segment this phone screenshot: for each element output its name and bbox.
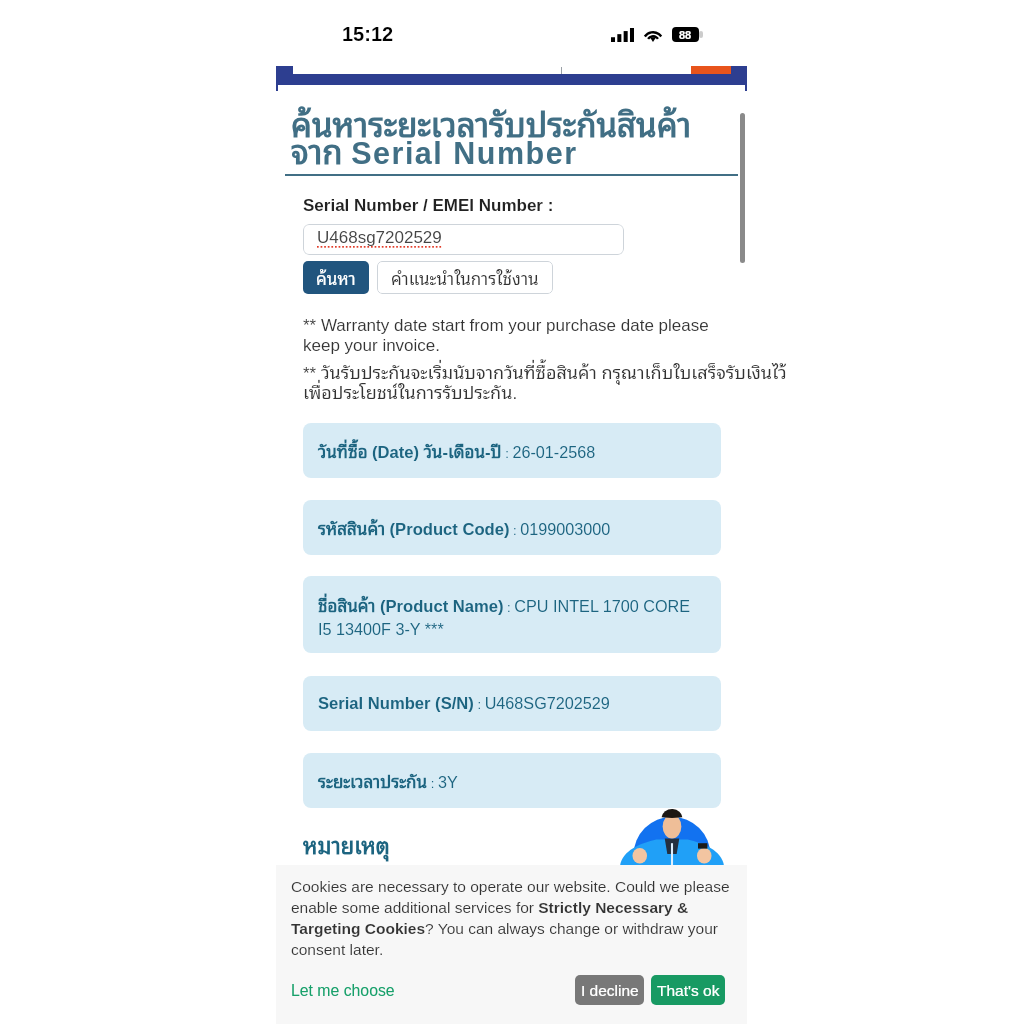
staticText: ค้นหา xyxy=(316,264,356,291)
staticText: Cookies are necessary to operate our web… xyxy=(291,878,730,959)
staticText: 15:12 xyxy=(342,23,394,45)
button[interactable]: ชื่อสินค้า (Product Name) : CPU INTEL 17… xyxy=(303,576,721,653)
button[interactable]: U468sg7202529 xyxy=(303,224,624,255)
staticText: Let me choose xyxy=(291,982,395,1000)
button[interactable]: That's ok xyxy=(651,975,725,1005)
button[interactable]: ระยะเวลาประกัน : 3Y xyxy=(303,753,721,808)
staticText: ชื่อสินค้า (Product Name) : CPU INTEL 17… xyxy=(318,591,691,639)
other: Wi-Fi xyxy=(643,28,663,42)
staticText: จาก Serial Number xyxy=(291,123,578,176)
staticText: หมายเหตุ xyxy=(303,826,390,861)
staticText: รหัสสินค้า (Product Code) : 0199003000 xyxy=(318,514,611,541)
staticText: ระยะเวลาประกัน : 3Y xyxy=(318,767,458,794)
button[interactable]: วันที่ซื้อ (Date) วัน-เดือน-ปี : 26-01-2… xyxy=(303,423,721,478)
staticText: I decline xyxy=(581,982,639,999)
button[interactable]: รหัสสินค้า (Product Code) : 0199003000 xyxy=(303,500,721,555)
button[interactable]: ค้นหา xyxy=(303,261,369,294)
button[interactable]: คำแนะนำในการใช้งาน xyxy=(377,261,553,294)
staticText: U468sg7202529 xyxy=(317,228,442,247)
staticText: วันที่ซื้อ (Date) วัน-เดือน-ปี : 26-01-2… xyxy=(318,437,596,464)
staticText: That's ok xyxy=(657,982,720,999)
other: Cellular signal xyxy=(611,28,634,42)
button[interactable]: I decline xyxy=(575,975,644,1005)
staticText: ** วันรับประกันจะเริ่มนับจากวันที่ซื้อสิ… xyxy=(303,356,787,405)
staticText: ค้นหาระยะเวลารับประกันสินค้า xyxy=(291,96,692,149)
staticText: 88 xyxy=(679,29,692,41)
staticText: คำแนะนำในการใช้งาน xyxy=(391,264,539,291)
button[interactable]: Serial Number (S/N) : U468SG7202529 xyxy=(303,676,721,731)
staticText: ** Warranty date start from your purchas… xyxy=(303,316,709,355)
staticText: Serial Number (S/N) : U468SG7202529 xyxy=(318,694,610,713)
staticText: Serial Number / EMEI Number : xyxy=(303,196,554,215)
button[interactable]: Let me choose xyxy=(288,978,398,1004)
